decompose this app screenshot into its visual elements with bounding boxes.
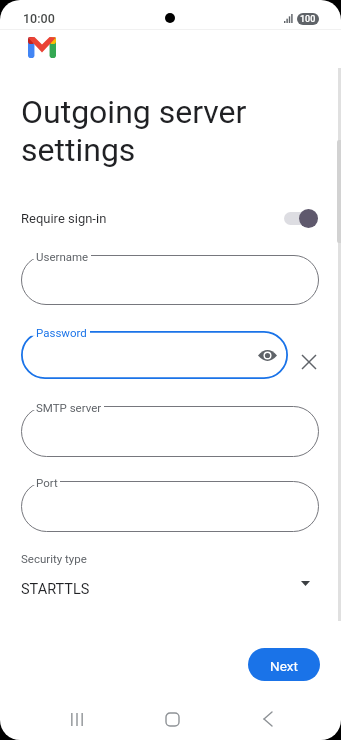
staticText: 10:00 <box>23 11 55 26</box>
button[interactable]: Next <box>248 648 320 681</box>
staticText: Require sign-in <box>21 211 107 226</box>
staticText: Next <box>270 658 298 674</box>
button[interactable]: Password <box>21 331 288 379</box>
button[interactable]: Home <box>151 698 193 740</box>
staticText: Username <box>36 250 89 263</box>
staticText: Port <box>36 476 58 489</box>
button[interactable] <box>280 206 320 230</box>
staticText: Outgoing server settings <box>21 93 247 169</box>
button[interactable]: Back <box>248 698 288 740</box>
button[interactable]: Username <box>21 255 319 305</box>
staticText: SMTP server <box>36 401 102 414</box>
button[interactable]: Show password <box>254 342 280 368</box>
button[interactable]: SMTP server <box>21 406 319 457</box>
button[interactable]: Security type <box>21 548 319 604</box>
button[interactable]: Recent apps <box>57 698 97 740</box>
staticText: Security type <box>21 552 87 565</box>
button[interactable]: Clear <box>294 347 323 376</box>
button[interactable]: Port <box>21 481 319 532</box>
button[interactable]: Require sign-in <box>0 203 341 233</box>
staticText: Password <box>36 326 87 339</box>
staticText: STARTTLS <box>21 581 90 598</box>
staticText: 100 <box>300 14 316 25</box>
